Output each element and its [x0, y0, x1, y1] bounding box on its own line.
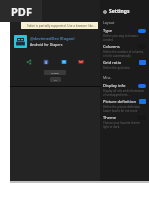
button[interactable]: +/- — [50, 77, 61, 82]
staticText: Define the grid ratio. — [103, 66, 131, 70]
staticText: Columns — [103, 44, 137, 49]
staticText: Layout — [103, 20, 115, 25]
button[interactable]: Share — [26, 59, 32, 65]
staticText: Picture definition — [103, 99, 139, 104]
staticText: Misc. — [103, 75, 112, 80]
staticText: Choose your favorite theme: light or dar… — [103, 121, 146, 128]
button[interactable]: Mail — [78, 59, 84, 65]
button[interactable]: @devtimedDev (Kogan) — [14, 35, 97, 48]
button[interactable]: Facebook — [43, 59, 49, 65]
staticText: +/- — [54, 78, 58, 81]
button[interactable]: Safari is partially supported. Use a bro… — [21, 22, 98, 29]
button[interactable]: Picture definition options — [139, 99, 146, 104]
staticText: Theme — [103, 115, 137, 120]
staticText: Access — [51, 71, 59, 74]
button[interactable]: Columns — [103, 44, 146, 60]
button[interactable]: Twitter — [61, 59, 67, 65]
staticText: Define your way to browse content. — [103, 34, 146, 41]
button[interactable]: Grid ratio options — [139, 60, 146, 65]
button[interactable]: Type — [103, 28, 146, 44]
button[interactable]: Display info toggle — [138, 84, 146, 88]
button[interactable]: Theme — [103, 115, 146, 131]
staticText: Settings — [109, 8, 130, 15]
staticText: PDF — [11, 4, 32, 19]
staticText: Type — [103, 28, 138, 33]
staticText: Safari is partially supported. Use a bro… — [27, 24, 96, 28]
button[interactable]: Grid ratio — [103, 60, 146, 73]
staticText: Define the number of columns, or let it … — [103, 50, 146, 57]
button[interactable]: PDF document — [0, 0, 42, 22]
button[interactable]: Settings — [103, 8, 146, 15]
button[interactable]: Access — [44, 70, 66, 75]
staticText: Android for Diapers — [30, 42, 63, 47]
staticText: @devtimedDev (Kogan) — [30, 36, 75, 41]
button[interactable]: Picture definition — [103, 99, 146, 115]
staticText: Display info — [103, 83, 138, 88]
button[interactable]: Display info — [103, 83, 146, 99]
staticText: Grid ratio — [103, 60, 139, 65]
staticText: Display all info and information of unma… — [103, 89, 146, 96]
button[interactable]: Type toggle — [138, 29, 146, 33]
staticText: Define the picture definition. Lower loa… — [103, 105, 146, 112]
